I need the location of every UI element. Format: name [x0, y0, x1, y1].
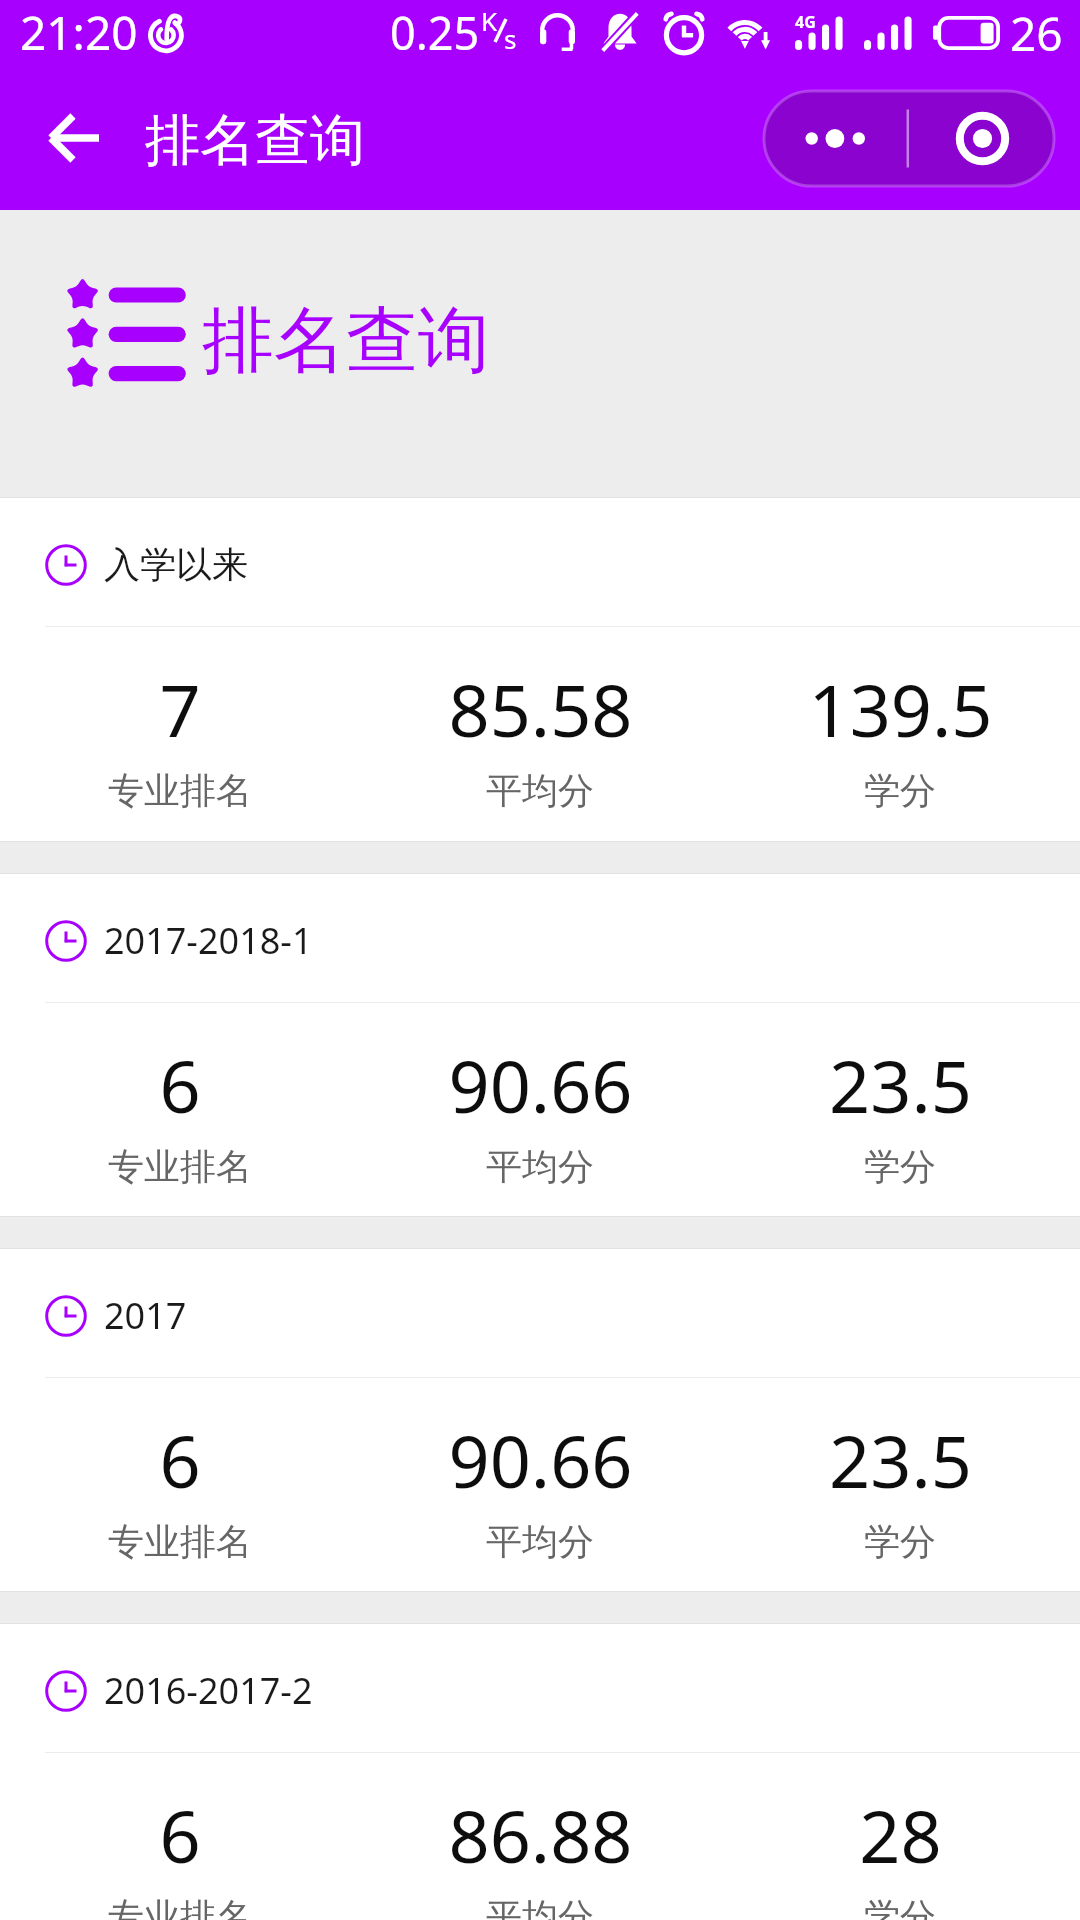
- staticText: 23.5: [829, 1411, 972, 1509]
- staticText: 排名查询: [202, 296, 490, 387]
- staticText: 2017-2018-1: [104, 916, 313, 965]
- staticText: 6: [159, 1786, 201, 1884]
- staticText: 入学以来: [104, 542, 248, 587]
- staticText: 90.66: [448, 1036, 633, 1134]
- staticText: 23.5: [829, 1036, 972, 1134]
- staticText: 平均分: [486, 1144, 594, 1189]
- staticText: 28: [859, 1786, 942, 1884]
- staticText: 6: [159, 1036, 201, 1134]
- staticText: 专业排名: [108, 1144, 252, 1189]
- staticText: 90.66: [448, 1411, 633, 1509]
- staticText: 6: [159, 1411, 201, 1509]
- button[interactable]: Close mini program: [908, 91, 1054, 186]
- staticText: 0.25: [390, 2, 480, 63]
- staticText: 排名查询: [145, 106, 365, 175]
- staticText: 4G: [795, 11, 816, 33]
- staticText: 2017: [104, 1291, 187, 1340]
- button[interactable]: Back: [47, 112, 101, 164]
- staticText: 学分: [864, 1144, 936, 1189]
- staticText: 学分: [864, 1519, 936, 1564]
- staticText: 平均分: [486, 768, 594, 813]
- staticText: 86.88: [448, 1786, 633, 1884]
- button[interactable]: More options: [764, 91, 908, 186]
- staticText: 学分: [864, 768, 936, 813]
- button[interactable]: 入学以来: [0, 498, 1080, 841]
- staticText: 26: [1010, 2, 1063, 65]
- staticText: 2016-2017-2: [104, 1666, 313, 1715]
- staticText: 专业排名: [108, 768, 252, 813]
- staticText: 7: [159, 660, 201, 758]
- staticText: 21:20: [20, 1, 138, 64]
- button[interactable]: 2017: [0, 1249, 1080, 1591]
- button[interactable]: 2016-2017-2: [0, 1624, 1080, 1920]
- staticText: 专业排名: [108, 1894, 252, 1920]
- staticText: K: [481, 3, 498, 38]
- button[interactable]: 2017-2018-1: [0, 874, 1080, 1216]
- staticText: 平均分: [486, 1519, 594, 1564]
- staticText: 专业排名: [108, 1519, 252, 1564]
- staticText: s: [504, 21, 517, 56]
- staticText: 学分: [864, 1894, 936, 1920]
- staticText: 139.5: [808, 660, 993, 758]
- staticText: 平均分: [486, 1894, 594, 1920]
- staticText: 85.58: [448, 660, 633, 758]
